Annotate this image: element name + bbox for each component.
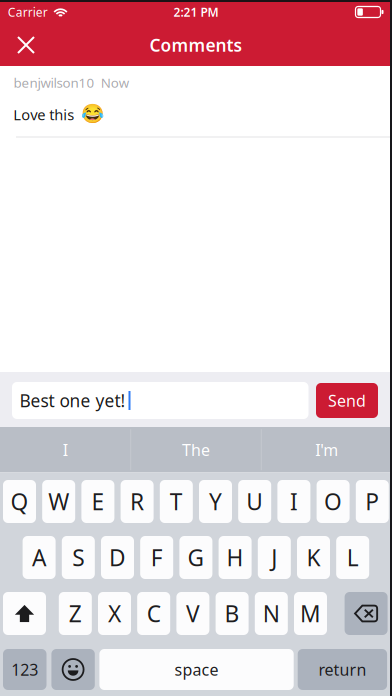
button[interactable]: Q — [3, 480, 36, 523]
staticText: space — [175, 659, 219, 680]
staticText: T — [170, 486, 183, 516]
staticText: Z — [69, 598, 82, 628]
staticText: D — [109, 542, 126, 572]
staticText: E — [91, 486, 104, 516]
button[interactable]: V — [176, 592, 209, 635]
button[interactable]: J — [258, 536, 291, 579]
button[interactable]: X — [98, 592, 131, 635]
staticText: S — [72, 542, 84, 572]
staticText: I — [63, 439, 68, 460]
button[interactable]: Send — [316, 383, 378, 418]
button[interactable]: Z — [59, 592, 92, 635]
staticText: I — [290, 486, 298, 516]
staticText: Send — [328, 390, 366, 411]
button[interactable]: O — [317, 480, 350, 523]
button[interactable]: Y — [199, 480, 232, 523]
staticText: 123 — [11, 659, 38, 680]
button[interactable]: B — [216, 592, 249, 635]
button[interactable]: I — [0, 427, 131, 472]
button[interactable]: I — [277, 480, 310, 523]
button[interactable]: 123 — [3, 649, 46, 690]
staticText: 😂 — [81, 103, 104, 125]
button[interactable]: I'm — [261, 427, 392, 472]
staticText: G — [187, 542, 204, 572]
button[interactable]: Delete — [345, 592, 388, 635]
staticText: C — [147, 598, 161, 628]
staticText: F — [151, 542, 163, 572]
button[interactable]: Emoji — [51, 649, 95, 690]
button[interactable]: N — [255, 592, 288, 635]
button[interactable]: A — [23, 536, 56, 579]
staticText: W — [48, 486, 69, 516]
staticText: A — [32, 542, 46, 572]
staticText: P — [365, 486, 379, 516]
button[interactable]: return — [298, 649, 387, 690]
button[interactable]: W — [42, 480, 75, 523]
staticText: N — [263, 598, 280, 628]
staticText: O — [324, 486, 342, 516]
button[interactable]: H — [219, 536, 252, 579]
button[interactable]: E — [81, 480, 114, 523]
button[interactable]: G — [179, 536, 212, 579]
staticText: return — [318, 659, 366, 680]
button[interactable]: Close — [4, 23, 48, 67]
staticText: benjwilson10 — [13, 74, 94, 91]
staticText: Y — [209, 486, 222, 516]
staticText: L — [347, 542, 359, 572]
button[interactable]: U — [238, 480, 271, 523]
staticText: Now — [101, 74, 129, 91]
button[interactable]: M — [294, 592, 327, 635]
staticText: J — [271, 542, 277, 572]
staticText: Carrier — [8, 4, 48, 20]
button[interactable]: P — [356, 480, 389, 523]
staticText: U — [246, 486, 263, 516]
button[interactable]: L — [336, 536, 369, 579]
staticText: X — [108, 598, 121, 628]
button[interactable]: T — [160, 480, 193, 523]
staticText: 2:21 PM — [173, 4, 218, 20]
staticText: Q — [10, 486, 28, 516]
staticText: B — [225, 598, 240, 628]
staticText: Best one yet! — [20, 389, 126, 412]
button[interactable]: R — [121, 480, 154, 523]
button[interactable]: D — [101, 536, 134, 579]
staticText: M — [300, 598, 321, 628]
button[interactable]: The — [131, 427, 261, 472]
staticText: I'm — [315, 439, 338, 460]
staticText: The — [182, 439, 210, 460]
button[interactable]: space — [99, 649, 294, 690]
button[interactable]: Shift — [3, 592, 46, 635]
button[interactable]: S — [62, 536, 95, 579]
staticText: R — [130, 486, 144, 516]
staticText: Love this — [13, 105, 74, 124]
button[interactable]: K — [297, 536, 330, 579]
button[interactable]: C — [137, 592, 170, 635]
staticText: H — [227, 542, 244, 572]
staticText: V — [186, 598, 200, 628]
staticText: K — [306, 542, 320, 572]
button[interactable]: F — [140, 536, 173, 579]
staticText: Comments — [149, 33, 242, 56]
